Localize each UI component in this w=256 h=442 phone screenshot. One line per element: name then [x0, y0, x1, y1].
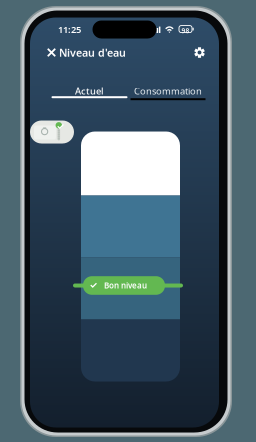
staticText: Consommation — [134, 85, 202, 97]
staticText: Niveau d'eau — [59, 45, 126, 60]
staticText: 11:25 — [58, 23, 81, 36]
button[interactable]: Fermer — [40, 40, 59, 65]
button[interactable]: Réglages — [188, 40, 211, 65]
staticText: Actuel — [75, 85, 104, 97]
button[interactable]: Niveau d'eau — [59, 37, 126, 68]
button[interactable]: Consommation — [127, 85, 209, 100]
button[interactable]: Actuel — [52, 85, 127, 100]
staticText: 98 — [181, 26, 189, 35]
staticText: Bon niveau — [104, 280, 147, 291]
